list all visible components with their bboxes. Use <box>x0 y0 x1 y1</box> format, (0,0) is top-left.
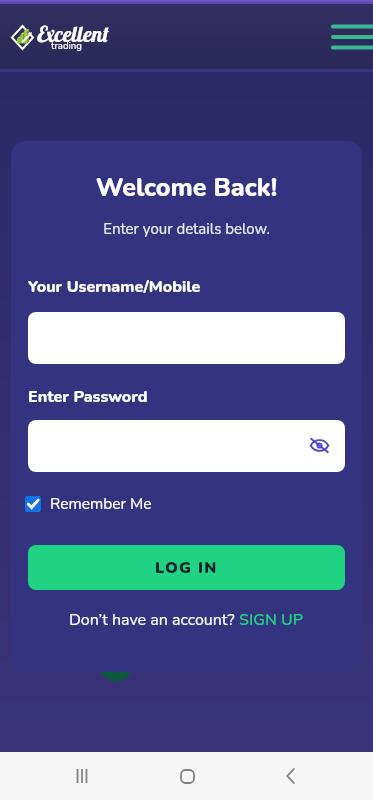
staticText: Enter Password <box>28 386 148 408</box>
button[interactable]: Home <box>165 754 209 798</box>
button[interactable]: Show password <box>28 420 345 472</box>
button[interactable]: Back <box>269 754 313 798</box>
staticText: Your Username/Mobile <box>28 276 201 298</box>
button[interactable]: SIGN UP <box>239 609 304 631</box>
button[interactable]: Remember Me <box>25 493 152 514</box>
staticText: Remember Me <box>50 493 152 514</box>
staticText: trading <box>51 39 82 52</box>
button[interactable] <box>28 312 345 364</box>
staticText: Excellent <box>37 20 109 48</box>
staticText: Welcome Back! <box>11 171 362 205</box>
button[interactable]: Recents <box>60 754 104 798</box>
staticText: Don’t have an account? <box>69 609 239 631</box>
button[interactable]: LOG IN <box>28 545 345 590</box>
staticText: LOG IN <box>155 557 218 579</box>
button[interactable]: Show password <box>309 435 330 456</box>
button[interactable]: Menu <box>329 17 373 57</box>
staticText: Enter your details below. <box>11 219 362 239</box>
